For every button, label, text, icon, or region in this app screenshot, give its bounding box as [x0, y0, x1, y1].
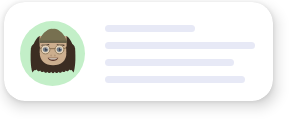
button[interactable]: Profile avatar — [4, 2, 273, 101]
other: Profile avatar — [20, 21, 85, 86]
